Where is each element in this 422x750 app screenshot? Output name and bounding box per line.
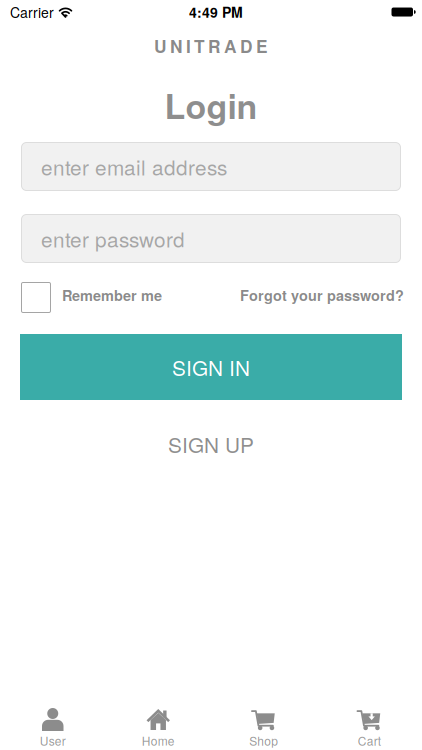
- staticText: SIGN IN: [172, 352, 250, 382]
- button[interactable]: Cart: [316, 708, 422, 748]
- staticText: Cart: [358, 732, 381, 749]
- staticText: Forgot your password?: [240, 285, 404, 305]
- staticText: Login: [164, 81, 257, 129]
- button[interactable]: Forgot your password?: [240, 287, 404, 308]
- button[interactable]: enter password: [0, 214, 422, 263]
- button[interactable]: Home: [105, 708, 211, 748]
- button[interactable]: SIGN UP: [168, 429, 254, 459]
- button[interactable]: SIGN IN: [0, 334, 422, 400]
- staticText: User: [40, 732, 66, 749]
- staticText: 4:49 PM: [189, 2, 243, 22]
- staticText: Home: [142, 732, 175, 749]
- button[interactable]: User: [0, 708, 105, 748]
- staticText: enter password: [41, 224, 185, 253]
- staticText: Shop: [249, 732, 278, 749]
- button[interactable]: Remember me: [21, 282, 162, 313]
- staticText: UNITRADE: [154, 34, 268, 58]
- staticText: SIGN UP: [168, 429, 254, 459]
- button[interactable]: enter email address: [0, 142, 422, 191]
- staticText: enter email address: [41, 152, 227, 181]
- staticText: Remember me: [62, 285, 162, 305]
- button[interactable]: Shop: [211, 708, 316, 748]
- staticText: Carrier: [10, 2, 54, 22]
